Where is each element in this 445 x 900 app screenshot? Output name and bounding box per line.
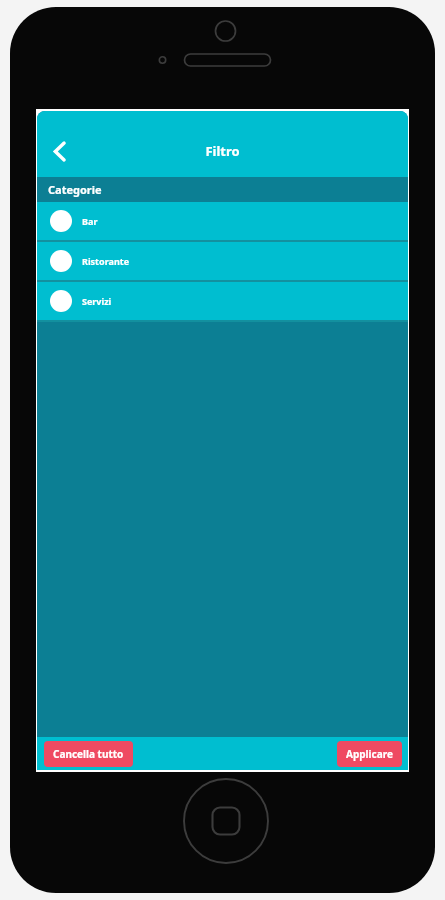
- button[interactable]: Back: [37, 129, 81, 173]
- button[interactable]: Servizi: [37, 282, 408, 320]
- staticText: Filtro: [37, 142, 408, 160]
- staticText: Cancella tutto: [53, 747, 124, 761]
- button[interactable]: Home: [182, 777, 270, 865]
- staticText: Bar: [82, 215, 98, 227]
- staticText: Categorie: [48, 182, 102, 197]
- staticText: Applicare: [346, 747, 393, 761]
- button[interactable]: Bar: [37, 202, 408, 240]
- button[interactable]: Cancella tutto: [44, 741, 133, 767]
- staticText: Ristorante: [82, 255, 130, 267]
- button[interactable]: Applicare: [337, 741, 402, 767]
- button[interactable]: Ristorante: [37, 242, 408, 280]
- staticText: Servizi: [82, 295, 112, 307]
